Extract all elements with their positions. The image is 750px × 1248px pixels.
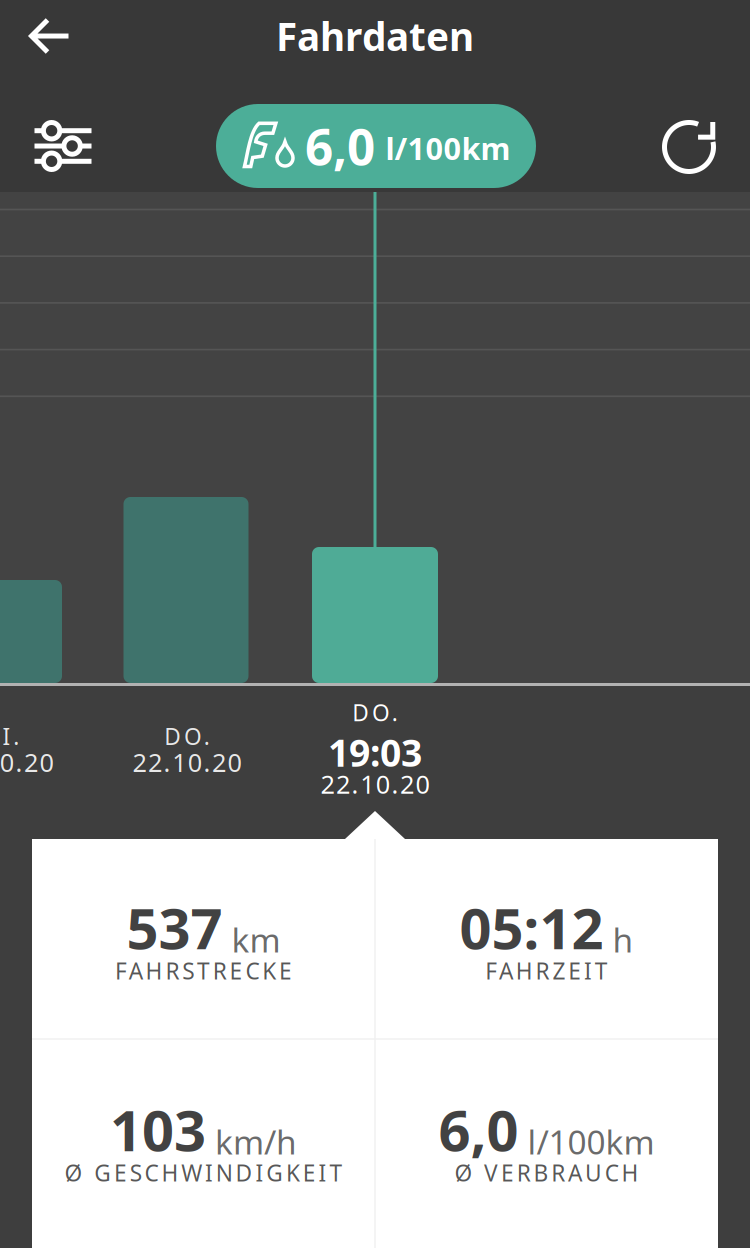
staticText: 6,0	[438, 1092, 518, 1167]
button[interactable]: 6,0	[216, 104, 536, 188]
staticText: km	[231, 917, 280, 962]
staticText: 22.10.20	[132, 745, 242, 779]
staticText: 537	[126, 890, 222, 965]
staticText: Fahrdaten	[276, 10, 474, 62]
staticText: DO.	[352, 697, 398, 727]
staticText: h	[612, 917, 633, 962]
staticText: 22.10.20	[320, 767, 430, 801]
staticText: FAHRZEIT	[485, 956, 608, 986]
staticText: l/100km	[527, 1119, 654, 1164]
staticText: km/h	[215, 1119, 297, 1164]
staticText: DO.	[164, 721, 210, 751]
staticText: Ø VERBRAUCH	[454, 1158, 638, 1188]
staticText: 21.10.20	[0, 745, 54, 779]
staticText: 103	[110, 1092, 206, 1167]
staticText: MI.	[0, 721, 19, 751]
staticText: 19:03	[328, 727, 422, 777]
button[interactable]: Back	[9, 0, 90, 74]
staticText: FAHRSTRECKE	[115, 956, 292, 986]
staticText: 6,0	[305, 113, 375, 179]
button[interactable]: Refresh	[644, 102, 733, 191]
staticText: 05:12	[459, 890, 603, 965]
staticText: Ø GESCHWINDIGKEIT	[65, 1158, 342, 1188]
staticText: l/100km	[385, 128, 510, 168]
button[interactable]: Filter settings	[14, 102, 111, 189]
